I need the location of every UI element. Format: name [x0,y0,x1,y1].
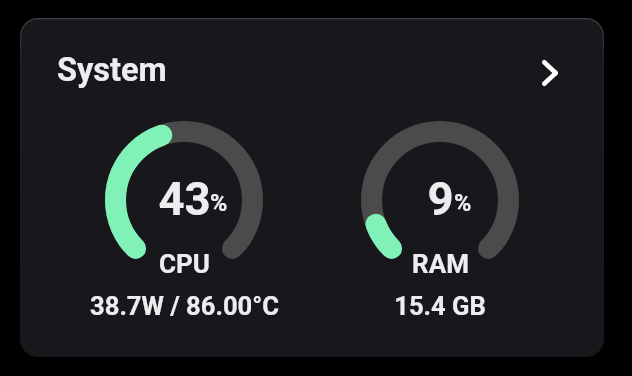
staticText: % [454,189,472,217]
staticText: 43 [158,173,211,226]
staticText: System [57,51,167,89]
staticText: 15.4 GB [394,291,486,321]
staticText: CPU [159,249,210,279]
button[interactable]: CPU 43 percent, 38.7W / 86.00°C [105,121,263,279]
button[interactable]: RAM 9 percent, 15.4 GB [361,121,519,279]
staticText: RAM [412,249,469,279]
button[interactable]: System [46,42,186,90]
button[interactable] [20,18,604,357]
staticText: 38.7W / 86.00°C [90,291,279,321]
staticText: 9 [427,173,454,226]
staticText: % [210,189,228,217]
button[interactable]: Open system details [528,51,572,95]
